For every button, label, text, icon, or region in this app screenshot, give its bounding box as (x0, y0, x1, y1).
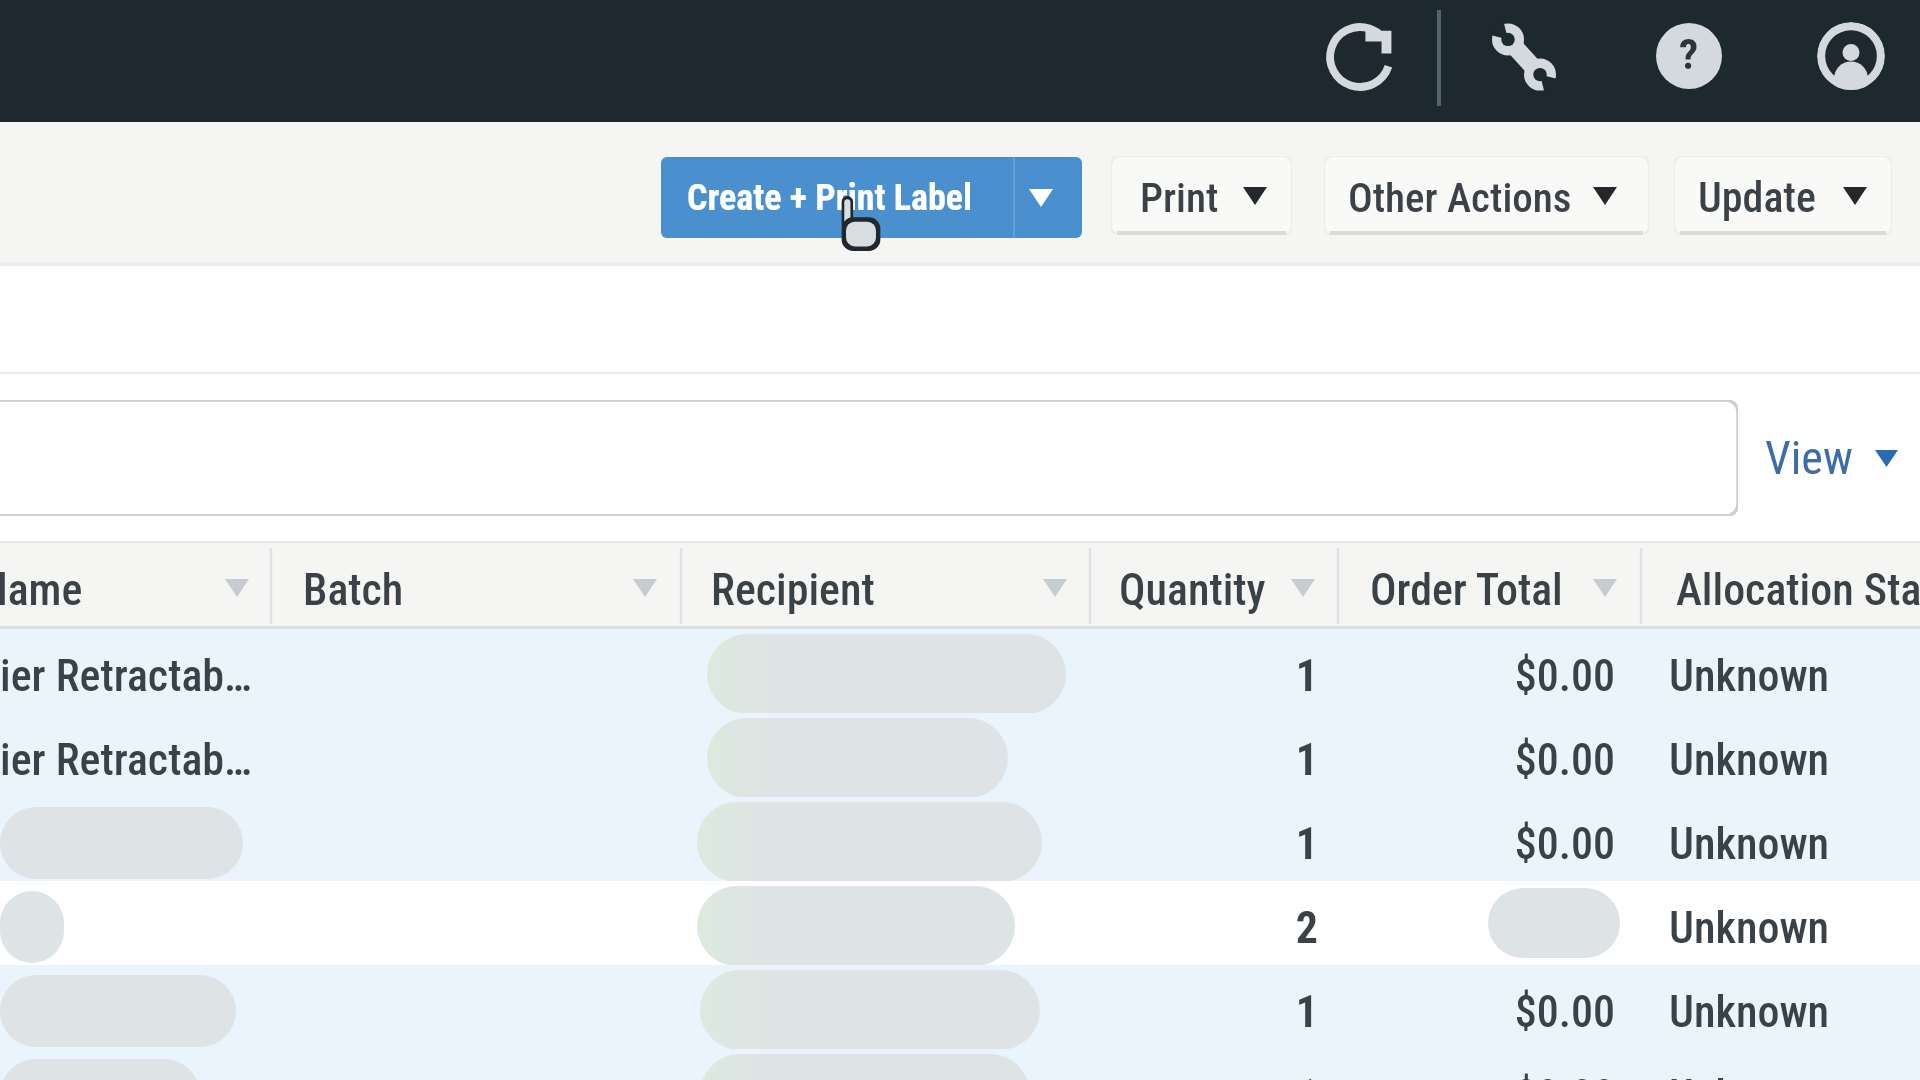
button[interactable]: Print (1111, 156, 1292, 235)
staticText: Print (1140, 174, 1219, 222)
button[interactable]: lame (0, 543, 271, 629)
staticText: Unknown (1669, 734, 1830, 786)
staticText: 2 (1090, 902, 1318, 954)
staticText: $0.00 (1338, 818, 1615, 870)
staticText: Create + Print Label (687, 177, 973, 219)
button[interactable]: 1 (0, 1049, 1920, 1080)
button[interactable]: Recipient (681, 543, 1090, 629)
button[interactable]: 1 (0, 965, 1920, 1049)
staticText: Unknown (1669, 818, 1830, 870)
button[interactable]: Help (1615, 0, 1763, 114)
staticText: Unknown (1669, 1070, 1830, 1080)
staticText: $0.00 (1338, 986, 1615, 1038)
button[interactable]: Create + Print Label (661, 157, 1082, 238)
staticText: 1 (1090, 818, 1318, 870)
button[interactable]: Allocation Status (1641, 543, 1920, 629)
staticText: Batch (303, 564, 404, 616)
button[interactable] (0, 400, 1738, 516)
button[interactable]: Update (1674, 156, 1892, 235)
button[interactable]: Account (1777, 0, 1920, 114)
button[interactable]: ier Retractab… (0, 713, 1920, 797)
staticText: $0.00 (1338, 1070, 1615, 1080)
staticText: Order Total (1370, 564, 1563, 616)
button[interactable]: Order Total (1338, 543, 1641, 629)
staticText: 1 (1090, 734, 1318, 786)
staticText: Unknown (1669, 650, 1830, 702)
button[interactable]: Refresh (1286, 0, 1434, 115)
staticText: Allocation Status (1676, 564, 1920, 616)
staticText: Unknown (1669, 986, 1830, 1038)
button[interactable]: Quantity (1090, 543, 1338, 629)
staticText: Update (1698, 173, 1816, 222)
staticText: lame (0, 564, 83, 616)
staticText: Other Actions (1348, 174, 1572, 222)
button[interactable]: 1 (0, 797, 1920, 881)
staticText: Unknown (1669, 902, 1830, 954)
button[interactable]: View (1765, 400, 1898, 516)
staticText: Quantity (1119, 564, 1266, 616)
staticText: ? (1679, 29, 1699, 79)
button[interactable]: ier Retractab… (0, 629, 1920, 713)
button[interactable]: Settings (1450, 0, 1598, 115)
staticText: View (1765, 431, 1853, 485)
staticText: 1 (1090, 1070, 1318, 1080)
button[interactable]: Batch (271, 543, 681, 629)
staticText: Recipient (711, 564, 875, 616)
staticText: 1 (1090, 986, 1318, 1038)
button[interactable]: Other Actions (1324, 156, 1649, 235)
staticText: ier Retractab… (0, 650, 252, 702)
staticText: 1 (1090, 650, 1318, 702)
button[interactable]: 2 (0, 881, 1920, 965)
staticText: $0.00 (1338, 650, 1615, 702)
staticText: ier Retractab… (0, 734, 252, 786)
staticText: $0.00 (1338, 734, 1615, 786)
